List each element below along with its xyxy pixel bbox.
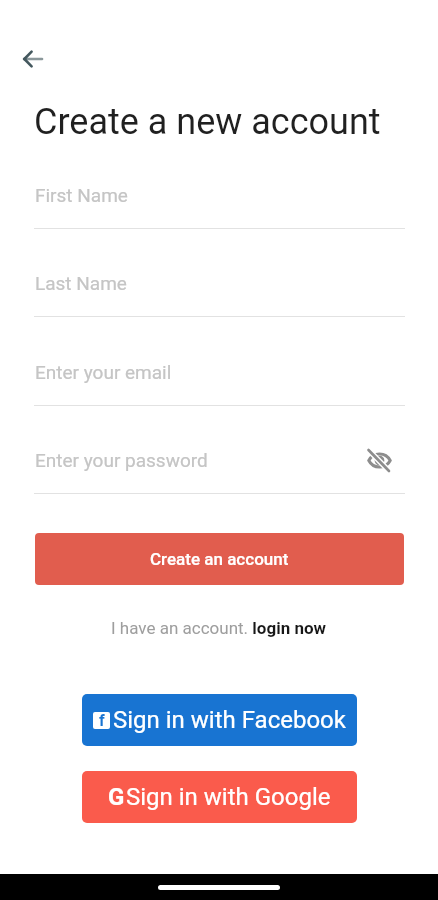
staticText: f (99, 712, 105, 728)
button[interactable]: G (82, 771, 357, 823)
button[interactable]: Create an account (35, 533, 404, 585)
staticText: Enter your password (35, 449, 208, 471)
staticText: Create a new account (34, 101, 381, 143)
button[interactable]: Last Name (34, 268, 405, 317)
staticText: First Name (35, 184, 128, 206)
button[interactable]: First Name (34, 180, 405, 229)
button[interactable]: Show password (365, 446, 393, 474)
button[interactable]: I have an account. login now (111, 618, 327, 638)
staticText: Last Name (35, 272, 127, 294)
button[interactable]: Enter your password (34, 445, 405, 494)
staticText: Sign in with Facebook (113, 706, 346, 734)
staticText: Create an account (150, 549, 289, 569)
button[interactable]: f (82, 694, 357, 746)
staticText: G (108, 783, 125, 811)
button[interactable]: Back (16, 42, 48, 74)
button[interactable]: Enter your email (34, 357, 405, 406)
staticText: Sign in with Google (126, 783, 331, 811)
staticText: Enter your email (35, 361, 172, 383)
